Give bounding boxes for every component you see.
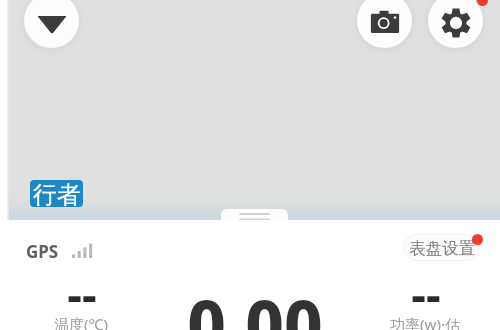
button[interactable]: 表盘设置 bbox=[403, 234, 480, 261]
staticText: 温度(℃) bbox=[54, 314, 108, 330]
staticText: GPS bbox=[26, 240, 59, 263]
button[interactable]: Expand panel bbox=[221, 209, 288, 220]
staticText: -- bbox=[411, 263, 441, 326]
staticText: -- bbox=[67, 263, 97, 326]
button[interactable]: GPS bbox=[26, 240, 92, 263]
button[interactable]: Camera bbox=[357, 0, 412, 48]
button[interactable]: Settings bbox=[428, 0, 483, 48]
staticText: 行者 bbox=[33, 180, 81, 207]
staticText: 表盘设置 bbox=[409, 238, 475, 259]
button[interactable]: Collapse bbox=[24, 0, 79, 48]
staticText: 0.00 bbox=[187, 278, 323, 330]
staticText: 功率(w)·估 bbox=[390, 314, 460, 330]
